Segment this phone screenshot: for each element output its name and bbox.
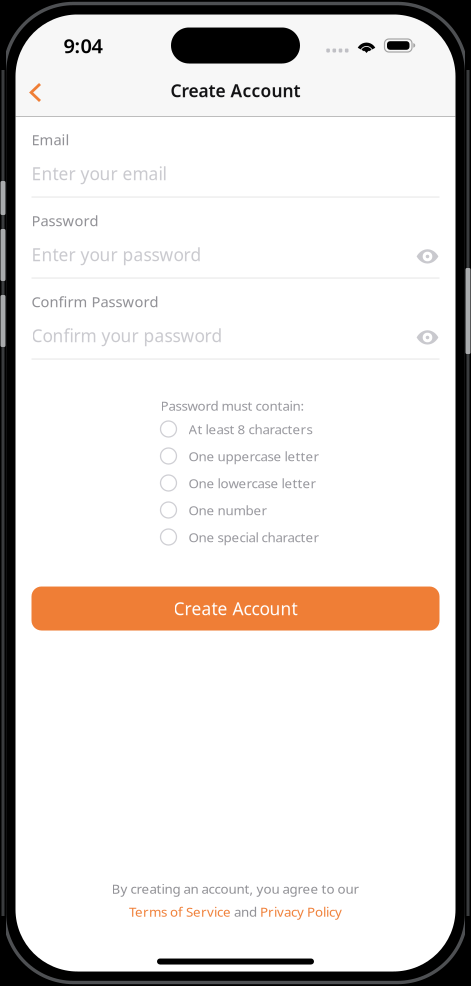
button[interactable]: Terms of Service (129, 903, 231, 920)
staticText: By creating an account, you agree to our (111, 880, 359, 897)
staticText: Password must contain: (160, 397, 304, 414)
button[interactable]: Back (15, 68, 55, 112)
staticText: Enter your password (31, 243, 201, 266)
button[interactable]: Privacy Policy (260, 903, 342, 920)
staticText: Create Account (170, 79, 300, 102)
staticText: One lowercase letter (188, 474, 316, 492)
staticText: Confirm Password (31, 292, 158, 311)
staticText: and (231, 903, 260, 920)
staticText: Terms of Service (129, 903, 231, 920)
staticText: Email (31, 130, 69, 149)
button[interactable]: Show confirm password (405, 322, 439, 348)
staticText: At least 8 characters (188, 420, 312, 438)
staticText: Password (31, 211, 98, 230)
staticText: One uppercase letter (188, 447, 319, 465)
button[interactable]: Show password (405, 241, 439, 267)
staticText: 9:04 (63, 32, 102, 59)
staticText: One special character (188, 528, 319, 546)
staticText: Create Account (173, 597, 297, 620)
staticText: One number (188, 501, 267, 519)
staticText: Privacy Policy (260, 903, 342, 920)
staticText: Enter your email (31, 162, 166, 185)
staticText: Confirm your password (31, 324, 222, 347)
button[interactable]: Create Account (31, 586, 439, 630)
